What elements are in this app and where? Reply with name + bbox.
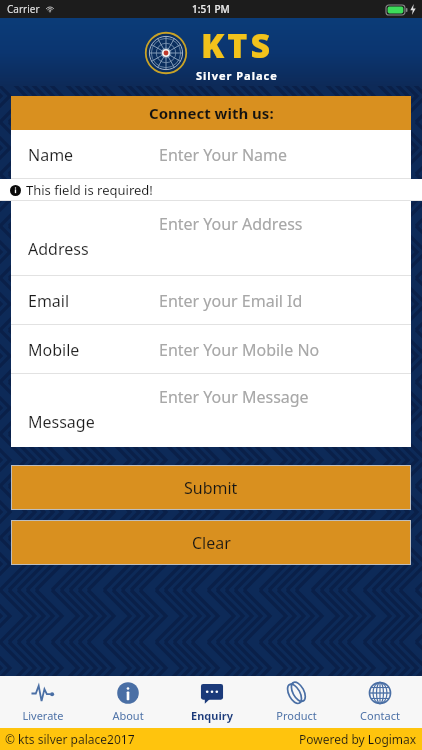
- staticText: Enter your Email Id: [159, 290, 303, 312]
- staticText: 1:51 PM: [192, 2, 230, 16]
- staticText: Enter Your Mobile No: [159, 339, 320, 361]
- staticText: Contact: [360, 708, 400, 723]
- button[interactable]: Name: [11, 130, 411, 179]
- staticText: Carrier: [7, 2, 40, 16]
- staticText: Name: [28, 144, 74, 166]
- staticText: KTS: [201, 22, 274, 68]
- button[interactable]: About: [85, 676, 170, 728]
- button[interactable]: Liverate: [0, 676, 85, 728]
- staticText: Enter Your Address: [159, 213, 303, 235]
- staticText: Enter Your Name: [159, 144, 288, 166]
- staticText: Product: [276, 708, 317, 723]
- staticText: Powered by Logimax: [299, 731, 417, 747]
- staticText: Message: [28, 411, 95, 433]
- button[interactable]: Enquiry: [170, 676, 254, 728]
- staticText: © kts silver palace2017: [5, 731, 135, 747]
- staticText: This field is required!: [26, 181, 153, 199]
- staticText: Silver Palace: [196, 68, 278, 83]
- staticText: Email: [28, 290, 70, 312]
- button[interactable]: Clear: [12, 521, 410, 564]
- button[interactable]: Submit: [12, 466, 410, 509]
- staticText: Mobile: [28, 339, 80, 361]
- button[interactable]: Email: [11, 276, 411, 325]
- staticText: Submit: [184, 477, 238, 499]
- button[interactable]: Product: [254, 676, 338, 728]
- staticText: Enquiry: [191, 708, 233, 723]
- button[interactable]: Enter Your Address: [11, 201, 411, 276]
- staticText: Connect with us:: [149, 103, 274, 123]
- button[interactable]: Enter Your Message: [11, 374, 411, 447]
- staticText: Clear: [192, 532, 231, 554]
- button[interactable]: Mobile: [11, 325, 411, 374]
- staticText: Liverate: [22, 708, 64, 723]
- staticText: About: [112, 708, 144, 723]
- button[interactable]: Contact: [338, 676, 422, 728]
- staticText: Enter Your Message: [159, 386, 309, 408]
- staticText: Address: [28, 238, 89, 260]
